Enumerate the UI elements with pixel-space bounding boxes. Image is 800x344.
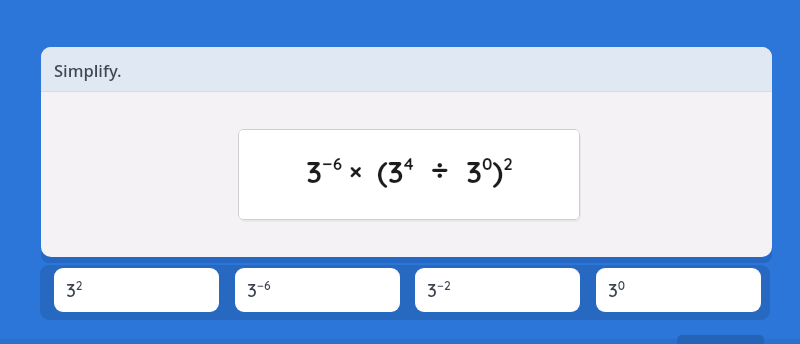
staticText: 3−6 [247,278,271,302]
staticText: 3−6 × (34 ÷ 30)2 [306,150,513,191]
staticText: 32 [66,278,83,302]
staticText: Simplify. [54,59,122,81]
staticText: 30 [608,278,626,302]
staticText: 3−2 [427,278,451,302]
